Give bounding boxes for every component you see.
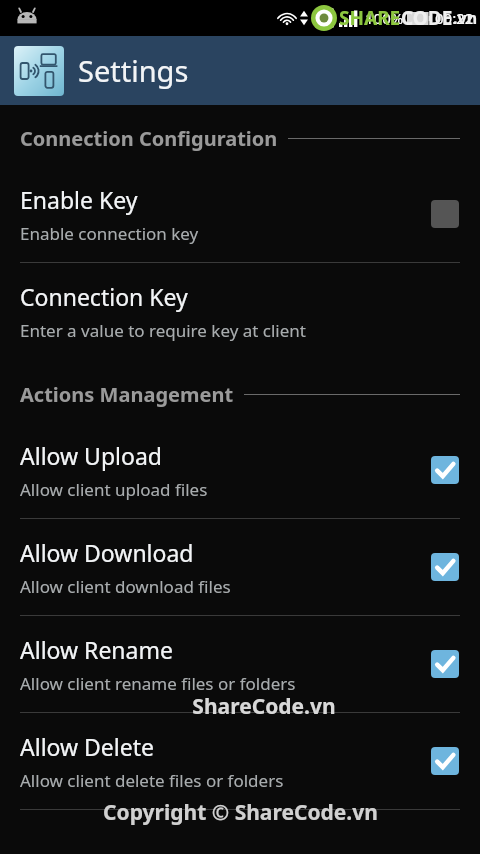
button[interactable]: Allow Download	[0, 519, 480, 615]
staticText: Allow Upload	[20, 440, 162, 471]
staticText: ShareCode.vn	[192, 692, 336, 721]
staticText: CODE	[401, 5, 453, 31]
button[interactable]: Enable Key	[0, 166, 480, 262]
button[interactable]: Checked	[430, 552, 460, 582]
staticText: 100%	[365, 8, 404, 28]
staticText: Allow Download	[20, 537, 194, 568]
button[interactable]: Checked	[430, 649, 460, 679]
button[interactable]: Unchecked	[430, 199, 460, 229]
staticText: Connection Key	[20, 281, 188, 312]
staticText: Allow Rename	[20, 634, 173, 665]
staticText: Allow client upload files	[20, 478, 208, 501]
button[interactable]: Checked	[430, 746, 460, 776]
staticText: Enter a value to require key at client	[20, 319, 306, 342]
staticText: Allow Delete	[20, 731, 155, 762]
staticText: SHARE	[339, 5, 401, 31]
staticText: Copyright © ShareCode.vn	[103, 798, 378, 827]
button[interactable]: Allow Rename	[0, 616, 480, 712]
staticText: Allow client delete files or folders	[20, 769, 284, 792]
staticText: Enable connection key	[20, 222, 199, 245]
button[interactable]: Allow Upload	[0, 422, 480, 518]
staticText: .vn	[453, 7, 478, 29]
button[interactable]: Connection Key	[0, 263, 480, 359]
button[interactable]: Settings	[0, 36, 480, 105]
staticText: Allow client download files	[20, 575, 231, 598]
staticText: Actions Management	[20, 381, 234, 408]
staticText: Settings	[78, 51, 189, 90]
staticText: Allow client rename files or folders	[20, 672, 296, 695]
staticText: Enable Key	[20, 184, 138, 215]
staticText: 00:22	[435, 8, 474, 28]
staticText: Connection Configuration	[20, 125, 278, 152]
button[interactable]: Allow Delete	[0, 713, 480, 809]
button[interactable]: Checked	[430, 455, 460, 485]
